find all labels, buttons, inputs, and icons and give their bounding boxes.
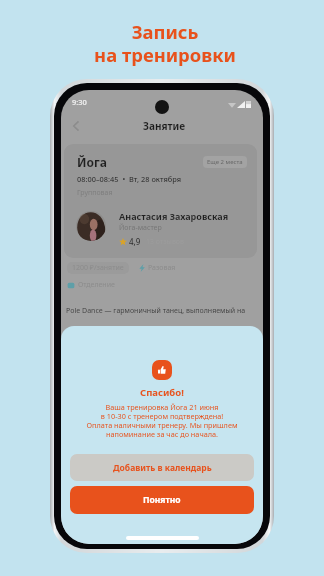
button[interactable]: Back xyxy=(67,117,84,134)
staticText: Добавить в календарь xyxy=(113,462,212,474)
button[interactable]: Йога xyxy=(64,144,257,258)
staticText: 9:30 xyxy=(72,97,87,107)
staticText: Еще 2 места xyxy=(207,158,243,166)
staticText: Понятно xyxy=(143,494,181,506)
button[interactable]: Понятно xyxy=(70,486,254,514)
staticText: 4,9 xyxy=(129,236,141,247)
staticText: Разовая xyxy=(148,263,176,273)
staticText: Занятие xyxy=(143,119,186,133)
staticText: Отделение xyxy=(78,280,115,290)
staticText: Спасибо! xyxy=(140,386,184,399)
button[interactable]: Добавить в календарь xyxy=(70,454,254,481)
staticText: 08:00–08:45 • Вт, 28 октября xyxy=(77,174,182,184)
button[interactable]: 1200 ₽/занятие xyxy=(67,262,129,274)
staticText: Pole Dance — гармоничный танец, выполняе… xyxy=(66,306,246,316)
staticText: 1200 ₽/занятие xyxy=(72,263,124,273)
staticText: Групповая xyxy=(77,188,113,198)
staticText: Анастасия Захаровская xyxy=(119,210,229,222)
staticText: Запись на тренировки xyxy=(3,19,324,68)
staticText: Ваша тренировка Йога 21 июня в 10-30 с т… xyxy=(86,402,238,439)
staticText: Йога-мастер xyxy=(119,223,162,233)
staticText: Йога xyxy=(77,154,107,170)
